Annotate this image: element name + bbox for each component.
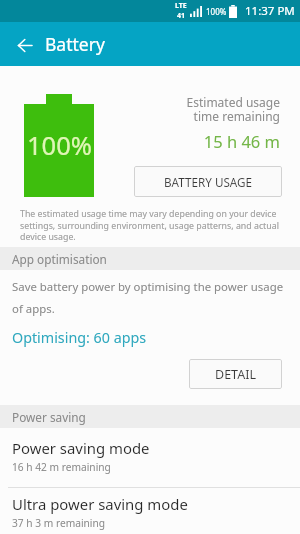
staticText: Optimising: 60 apps bbox=[12, 328, 147, 347]
staticText: 16 h 42 m remaining bbox=[12, 460, 111, 474]
staticText: Power saving mode bbox=[12, 438, 150, 458]
staticText: 11:37 PM bbox=[245, 3, 295, 19]
staticText: 15 h 46 m bbox=[0, 130, 280, 152]
button[interactable]: BATTERY USAGE bbox=[134, 166, 282, 197]
button[interactable]: Power saving mode bbox=[0, 428, 300, 487]
staticText: Battery bbox=[45, 32, 105, 56]
button[interactable]: Ultra power saving mode bbox=[0, 488, 300, 534]
button[interactable]: Save battery power by optimising the pow… bbox=[0, 270, 300, 405]
staticText: Save battery power by optimising the pow… bbox=[12, 279, 294, 317]
staticText: The estimated usage time may vary depend… bbox=[20, 208, 280, 242]
staticText: LTE bbox=[175, 1, 187, 11]
staticText: Ultra power saving mode bbox=[12, 494, 188, 514]
staticText: 100% bbox=[206, 6, 227, 17]
staticText: Estimated usage time remaining bbox=[0, 94, 280, 125]
staticText: 41 bbox=[177, 11, 186, 21]
staticText: 37 h 3 m remaining bbox=[12, 516, 106, 530]
staticText: BATTERY USAGE bbox=[164, 174, 253, 190]
button[interactable]: DETAIL bbox=[189, 359, 282, 389]
staticText: Power saving bbox=[12, 409, 86, 425]
staticText: App optimisation bbox=[12, 251, 107, 267]
button[interactable]: Back bbox=[9, 22, 39, 66]
staticText: DETAIL bbox=[215, 366, 256, 383]
staticText: 100% bbox=[27, 128, 92, 163]
